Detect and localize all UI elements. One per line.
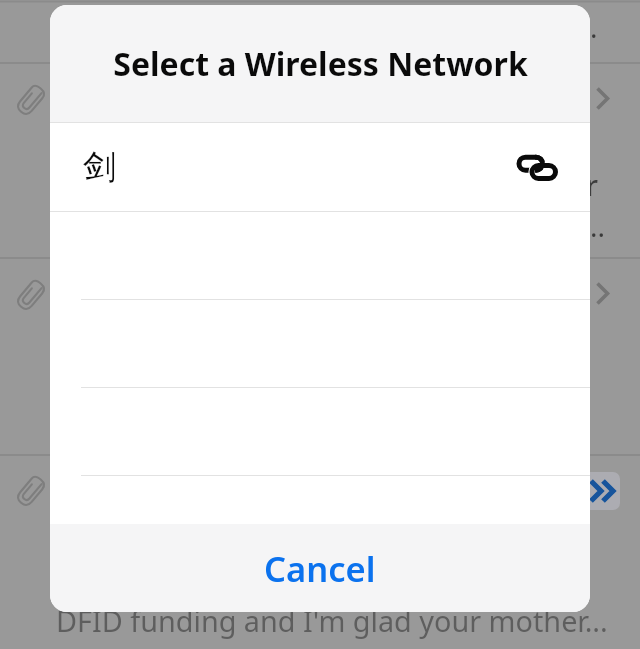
other: Linked network [511,152,558,182]
staticText: . [590,8,598,46]
staticText: Cancel [264,545,376,592]
staticText: ir [578,165,599,204]
staticText: DFID funding and I'm glad your mother... [56,601,608,640]
staticText: Select a Wireless Network [113,42,528,86]
button[interactable]: 剑 [50,123,590,211]
staticText: .. [590,207,606,245]
staticText: 剑 [83,146,116,188]
button[interactable]: Cancel [50,524,590,612]
button[interactable]: Forward [582,472,620,510]
